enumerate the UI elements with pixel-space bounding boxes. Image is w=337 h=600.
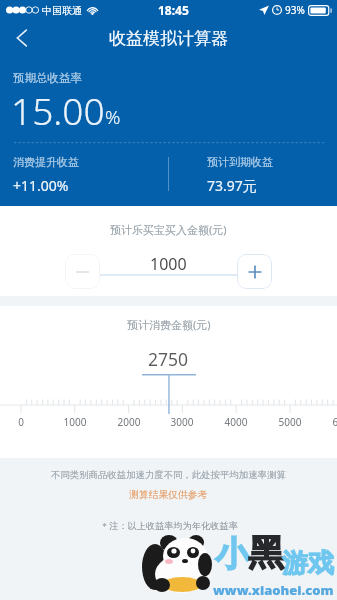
staticText: 3000 bbox=[166, 415, 198, 429]
staticText: 2000 bbox=[113, 415, 145, 429]
staticText: 2750 bbox=[148, 347, 189, 371]
staticText: 1000 bbox=[59, 415, 91, 429]
staticText: 1000 bbox=[150, 253, 187, 275]
staticText: 黑 bbox=[248, 530, 284, 575]
staticText: 收益模拟计算器 bbox=[109, 28, 228, 49]
staticText: 预期总收益率 bbox=[13, 71, 82, 85]
staticText: www.xiaohei.com bbox=[213, 581, 334, 599]
button[interactable]: Decrease bbox=[65, 254, 100, 289]
staticText: 预计乐买宝买入金额(元) bbox=[110, 222, 227, 237]
staticText: 18:45 bbox=[158, 2, 189, 18]
staticText: % bbox=[105, 104, 121, 130]
staticText: 6000 bbox=[328, 415, 337, 429]
staticText: 预计消费金额(元) bbox=[127, 317, 211, 332]
staticText: 中国联通 bbox=[42, 4, 82, 17]
staticText: +11.00% bbox=[13, 176, 69, 195]
staticText: 0 bbox=[5, 415, 37, 429]
staticText: 73.97元 bbox=[207, 176, 257, 195]
staticText: 93% bbox=[285, 3, 305, 17]
staticText: 小 bbox=[215, 533, 249, 576]
staticText: 15.00 bbox=[11, 85, 105, 135]
staticText: 测算结果仅供参考 bbox=[129, 489, 208, 501]
staticText: 消费提升收益 bbox=[13, 155, 79, 169]
staticText: ＊注：以上收益率均为年化收益率 bbox=[100, 520, 238, 532]
staticText: 不同类别商品收益加速力度不同，此处按平均加速率测算 bbox=[51, 469, 286, 481]
staticText: 4000 bbox=[220, 415, 252, 429]
staticText: 游戏 bbox=[282, 547, 334, 580]
staticText: 5000 bbox=[274, 415, 306, 429]
button[interactable]: Back bbox=[0, 16, 44, 60]
button[interactable]: Increase bbox=[237, 254, 272, 289]
staticText: 预计到期收益 bbox=[207, 155, 273, 169]
